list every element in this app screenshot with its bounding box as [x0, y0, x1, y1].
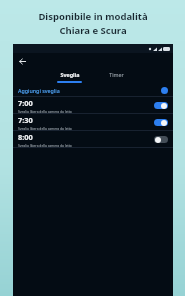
staticText: Disponibile in modalità — [38, 10, 148, 23]
staticText: Sveglia libera della camera da letto — [18, 126, 72, 130]
staticText: 8:00 — [18, 132, 33, 142]
staticText: 7:30 — [18, 115, 33, 125]
staticText: 7:00 — [18, 98, 33, 108]
button[interactable]: Disattiva sveglia 7:30 — [154, 119, 168, 126]
staticText: Timer — [109, 71, 124, 78]
staticText: Aggiungi sveglia — [18, 87, 60, 94]
button[interactable]: Attiva sveglia 8:00 — [154, 136, 168, 143]
button[interactable]: 8:00 — [13, 131, 173, 148]
staticText: Sveglia libera della camera da letto — [18, 143, 72, 147]
button[interactable]: Indietro — [16, 55, 28, 67]
staticText: Chiara e Scura — [59, 24, 127, 37]
staticText: Sveglia libera della camera da letto — [18, 109, 72, 113]
button[interactable]: Aggiungi sveglia — [13, 84, 173, 97]
button[interactable]: Timer — [100, 71, 133, 83]
button[interactable]: Disattiva sveglia 7:00 — [154, 102, 168, 109]
button[interactable]: 7:00 — [13, 97, 173, 114]
button[interactable]: Aggiungi sveglia — [161, 87, 168, 94]
button[interactable]: 7:30 — [13, 114, 173, 131]
staticText: Sveglia — [60, 71, 80, 78]
button[interactable]: Sveglia — [53, 71, 86, 83]
